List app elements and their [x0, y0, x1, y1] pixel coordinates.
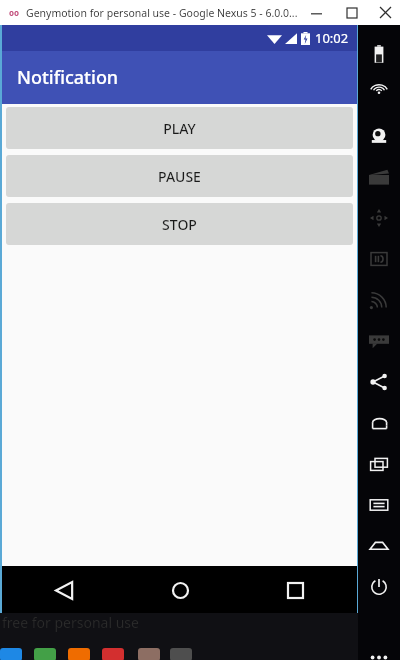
button[interactable]: PLAY [6, 107, 353, 149]
button[interactable]: Power [358, 566, 400, 607]
button[interactable]: Close [370, 0, 400, 25]
button[interactable]: PAUSE [6, 155, 353, 197]
button[interactable] [34, 648, 56, 660]
button[interactable]: GPS [358, 74, 400, 115]
staticText: PLAY [163, 119, 196, 138]
button[interactable] [102, 648, 124, 660]
staticText: oo [9, 7, 19, 18]
button[interactable]: Network [358, 279, 400, 320]
button[interactable]: More options [358, 637, 400, 660]
button[interactable]: STOP [6, 203, 353, 245]
button[interactable] [138, 648, 160, 660]
button[interactable] [68, 648, 90, 660]
staticText: STOP [162, 215, 197, 234]
button[interactable]: Camera [358, 115, 400, 156]
button[interactable]: Maximize [334, 0, 370, 25]
staticText: Notification [17, 65, 119, 90]
button[interactable]: SMS [358, 320, 400, 361]
button[interactable]: Video recording [358, 156, 400, 197]
button[interactable]: Home [158, 568, 202, 612]
button[interactable]: Back [42, 568, 86, 612]
button[interactable]: Minimize [298, 0, 334, 25]
button[interactable]: Menu [358, 484, 400, 525]
staticText: Genymotion for personal use - Google Nex… [26, 6, 298, 20]
staticText: PAUSE [158, 167, 201, 186]
button[interactable]: Identifiers [358, 238, 400, 279]
button[interactable]: Recent apps [358, 443, 400, 484]
button[interactable]: Accelerometer [358, 197, 400, 238]
button[interactable]: Back [358, 402, 400, 443]
button[interactable] [0, 648, 22, 660]
button[interactable]: Home [358, 525, 400, 566]
button[interactable]: Battery [358, 33, 400, 74]
button[interactable] [170, 648, 192, 660]
staticText: 10:02 [315, 29, 349, 47]
button[interactable]: Recent apps [273, 568, 317, 612]
button[interactable]: Share [358, 361, 400, 402]
staticText: free for personal use [2, 613, 139, 632]
